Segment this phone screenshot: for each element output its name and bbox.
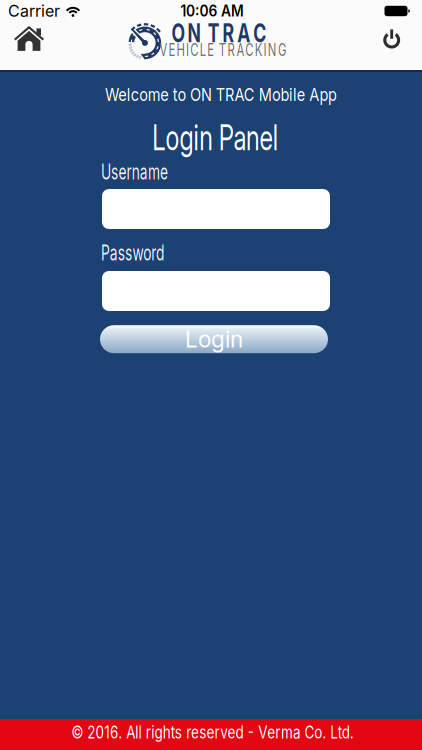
button[interactable]: Login: [100, 325, 328, 353]
staticText: 10:06 AM: [177, 2, 247, 20]
staticText: Welcome to ON TRAC Mobile App: [72, 83, 369, 106]
staticText: Password: [101, 240, 196, 265]
staticText: Username: [101, 159, 201, 184]
staticText: Login Panel: [125, 117, 305, 158]
button[interactable]: Home: [14, 26, 44, 51]
staticText: V E H I C L E T R A C K I N G: [130, 40, 316, 60]
staticText: Carrier: [8, 1, 60, 21]
staticText: © 2016. All rights reserved - Verma Co. …: [38, 722, 387, 743]
staticText: O N T R A C: [151, 18, 287, 48]
staticText: Login: [185, 325, 243, 353]
button[interactable]: Logout: [383, 28, 401, 49]
